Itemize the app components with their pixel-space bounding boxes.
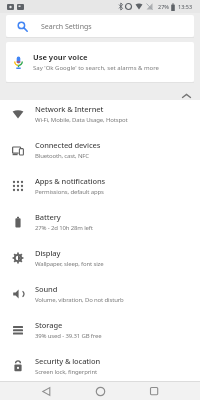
staticText: Network & Internet [35, 104, 104, 114]
staticText: Permissions, default apps [35, 188, 104, 196]
staticText: Battery [35, 212, 61, 222]
button[interactable] [0, 83, 200, 100]
staticText: 13:53 [178, 3, 193, 10]
staticText: Apps & notifications [35, 176, 106, 186]
staticText: 27% - 2d 10h 28m left [35, 224, 93, 232]
button[interactable]: Battery [0, 208, 200, 244]
staticText: Volume, vibration, Do not disturb [35, 296, 124, 304]
staticText: Screen lock, fingerprint [35, 368, 98, 376]
button[interactable]: Network & Internet [0, 100, 200, 136]
button[interactable]: Use your voice [6, 42, 194, 82]
staticText: 39% used - 39.31 GB free [35, 332, 102, 340]
button[interactable]: Search Settings [6, 15, 194, 37]
staticText: Display [35, 248, 61, 258]
button[interactable]: Display [0, 244, 200, 280]
staticText: 27% [158, 3, 169, 10]
staticText: Sound [35, 284, 58, 294]
button[interactable]: Connected devices [0, 136, 200, 172]
staticText: Wallpaper, sleep, font size [35, 260, 104, 268]
button[interactable] [127, 382, 181, 400]
button[interactable]: Storage [0, 316, 200, 352]
button[interactable]: Security & location [0, 352, 200, 388]
button[interactable] [73, 382, 127, 400]
button[interactable]: Apps & notifications [0, 172, 200, 208]
staticText: Say 'Ok Google' to search, set alarms & … [33, 64, 159, 72]
staticText: Bluetooth, cast, NFC [35, 152, 89, 160]
button[interactable] [19, 382, 73, 400]
staticText: Wi-Fi, Mobile, Data Usage, Hotspot [35, 116, 128, 124]
staticText: Connected devices [35, 140, 101, 150]
staticText: Search Settings [41, 22, 92, 32]
button[interactable]: Sound [0, 280, 200, 316]
staticText: Storage [35, 320, 63, 330]
staticText: Security & location [35, 356, 101, 366]
staticText: Use your voice [33, 52, 88, 62]
